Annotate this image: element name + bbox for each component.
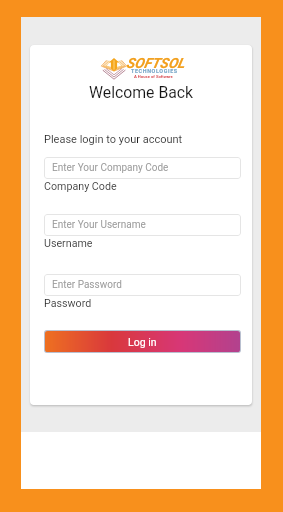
staticText: A House of Software <box>134 74 173 79</box>
staticText: Enter Your Username <box>52 219 146 231</box>
staticText: Company Code <box>44 180 117 193</box>
staticText: Password <box>44 297 92 310</box>
staticText: Username <box>44 237 93 250</box>
staticText: Enter Password <box>52 279 122 291</box>
button[interactable]: Enter Password <box>44 274 241 296</box>
button[interactable]: Log in <box>45 331 240 352</box>
button[interactable]: Enter Your Company Code <box>44 157 241 179</box>
staticText: TECHNOLOGIES <box>131 68 178 74</box>
staticText: Enter Your Company Code <box>52 162 169 174</box>
staticText: Log in <box>128 336 157 348</box>
button[interactable]: Enter Your Username <box>44 214 241 236</box>
staticText: Welcome Back <box>89 83 194 102</box>
staticText: Please login to your account <box>44 133 183 146</box>
staticText: SOFTSOL <box>126 55 185 71</box>
